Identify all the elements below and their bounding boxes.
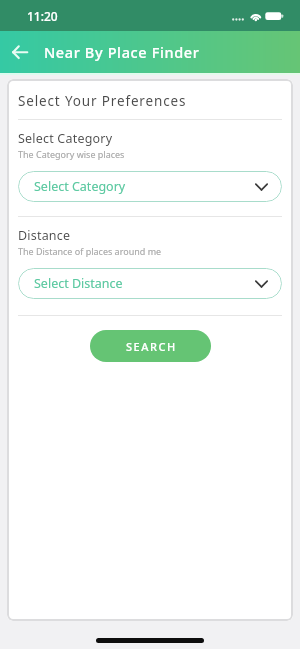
staticText: Select Distance — [34, 275, 123, 292]
staticText: SEARCH — [126, 339, 177, 354]
staticText: Near By Place Finder — [44, 42, 200, 62]
button[interactable]: Select Distance — [18, 268, 282, 299]
staticText: 11:20 — [27, 8, 58, 24]
staticText: Select Your Preferences — [18, 92, 187, 110]
staticText: Distance — [18, 227, 71, 244]
button[interactable]: Select Category — [18, 171, 282, 202]
button[interactable]: SEARCH — [90, 330, 211, 362]
staticText: Select Category — [18, 130, 113, 147]
staticText: Select Category — [34, 178, 126, 195]
button[interactable]: Back — [3, 36, 35, 68]
staticText: The Distance of places around me — [18, 245, 162, 257]
staticText: The Category wise places — [18, 148, 125, 160]
